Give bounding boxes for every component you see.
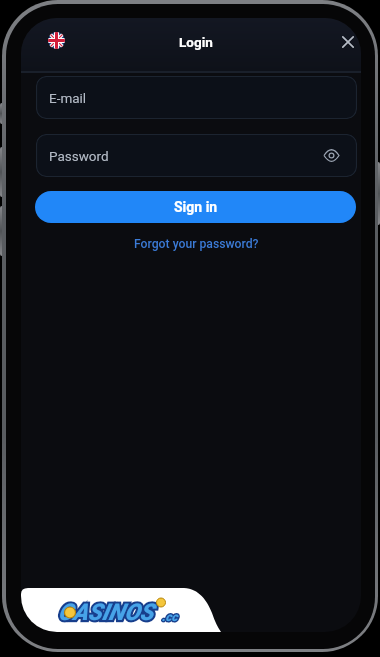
button[interactable] [337,31,359,53]
button[interactable] [48,32,65,49]
staticText: CASINOS [58,599,154,626]
button[interactable]: Forgot your password? [36,234,357,254]
button[interactable]: Sign in [35,191,356,223]
staticText: .cc [162,610,178,624]
staticText: E-mail [49,90,87,106]
staticText: CASINOS [58,599,154,626]
staticText: Forgot your password? [134,237,259,251]
staticText: Login [179,34,213,50]
staticText: Sign in [174,199,218,215]
button[interactable]: E-mail [36,76,357,119]
staticText: Password [49,148,109,164]
button[interactable]: Password [36,134,357,177]
staticText: .cc [162,610,178,624]
